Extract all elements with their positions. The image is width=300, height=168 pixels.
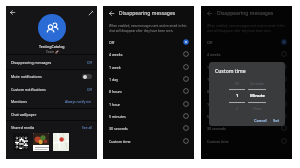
button[interactable]: See all bbox=[82, 125, 92, 129]
staticText: When enabled, new messages sent and rece… bbox=[207, 24, 285, 33]
button[interactable]: Mentions bbox=[6, 95, 97, 107]
button[interactable]: Set bbox=[271, 117, 282, 124]
staticText: Shared media bbox=[11, 125, 35, 130]
button[interactable]: 5 minutes bbox=[103, 110, 194, 122]
button[interactable]: 1 hour bbox=[201, 98, 292, 110]
staticText: 59 bbox=[235, 81, 240, 86]
staticText: Off bbox=[207, 40, 213, 45]
button[interactable]: Custom notifications bbox=[6, 83, 97, 95]
button[interactable]: Edit bbox=[86, 8, 95, 17]
button[interactable] bbox=[33, 133, 49, 151]
staticText: Minute bbox=[250, 93, 265, 99]
button[interactable]: 8 hours bbox=[201, 85, 292, 97]
button[interactable]: Off bbox=[103, 36, 194, 48]
staticText: 2 bbox=[236, 106, 239, 111]
button[interactable]: 5 minutes bbox=[201, 110, 292, 122]
staticText: 4 weeks bbox=[109, 52, 123, 57]
staticText: Team 🚀 bbox=[46, 50, 59, 54]
staticText: 5 minutes bbox=[109, 114, 126, 119]
staticText: 1 hour bbox=[109, 102, 121, 107]
staticText: Mentions bbox=[11, 99, 27, 104]
staticText: Mute notifications bbox=[11, 74, 42, 79]
button[interactable]: Chat wallpaper bbox=[6, 109, 97, 120]
staticText: 8 hours bbox=[207, 89, 220, 94]
staticText: 1 day bbox=[207, 77, 217, 82]
button[interactable]: Back bbox=[107, 9, 116, 18]
button[interactable]: Off bbox=[201, 36, 292, 48]
button[interactable]: 1 hour bbox=[103, 98, 194, 110]
button[interactable]: 1 day bbox=[201, 73, 292, 85]
button[interactable]: 1 week bbox=[201, 61, 292, 73]
staticText: 5 minutes bbox=[207, 114, 224, 119]
staticText: 30 seconds bbox=[109, 126, 128, 131]
staticText: Off bbox=[109, 40, 115, 45]
staticText: Disappearing messages bbox=[217, 10, 274, 17]
button[interactable]: 1 week bbox=[103, 61, 194, 73]
staticText: When enabled, new messages sent and rece… bbox=[109, 24, 187, 33]
button[interactable] bbox=[13, 133, 29, 151]
button[interactable]: Mute notifications bbox=[6, 70, 97, 83]
button[interactable]: 30 seconds bbox=[201, 122, 292, 134]
staticText: Always notify me bbox=[65, 99, 92, 103]
staticText: 1 week bbox=[109, 65, 121, 70]
staticText: Seconds bbox=[250, 81, 265, 86]
staticText: Hour bbox=[253, 106, 262, 111]
staticText: TestingCatalog bbox=[39, 44, 65, 49]
staticText: 8 hours bbox=[109, 89, 122, 94]
button[interactable]: Cancel bbox=[252, 117, 269, 124]
staticText: Custom notifications bbox=[11, 87, 46, 92]
staticText: 30 seconds bbox=[207, 126, 226, 131]
staticText: Custom time bbox=[109, 139, 131, 144]
button[interactable]: 8 hours bbox=[103, 85, 194, 97]
staticText: 1 bbox=[236, 93, 239, 99]
staticText: Off bbox=[87, 60, 92, 64]
button[interactable]: Back bbox=[205, 9, 214, 18]
button[interactable]: Custom time bbox=[201, 135, 292, 147]
staticText: 1 hour bbox=[207, 102, 219, 107]
button[interactable]: Custom time bbox=[103, 135, 194, 147]
staticText: Custom time bbox=[215, 68, 246, 75]
staticText: 1 week bbox=[207, 65, 219, 70]
staticText: Chat wallpaper bbox=[11, 112, 37, 117]
button[interactable]: 4 weeks bbox=[103, 48, 194, 60]
button[interactable]: Back bbox=[8, 8, 17, 17]
staticText: Custom time bbox=[207, 139, 229, 144]
staticText: 4 weeks bbox=[207, 52, 221, 57]
staticText: Disappearing messages bbox=[11, 60, 52, 65]
staticText: 1 day bbox=[109, 77, 119, 82]
button[interactable] bbox=[53, 133, 69, 151]
staticText: Off bbox=[87, 87, 92, 91]
staticText: Disappearing messages bbox=[119, 10, 176, 17]
button[interactable]: 30 seconds bbox=[103, 122, 194, 134]
button[interactable]: 4 weeks bbox=[201, 48, 292, 60]
button[interactable]: 1 day bbox=[103, 73, 194, 85]
